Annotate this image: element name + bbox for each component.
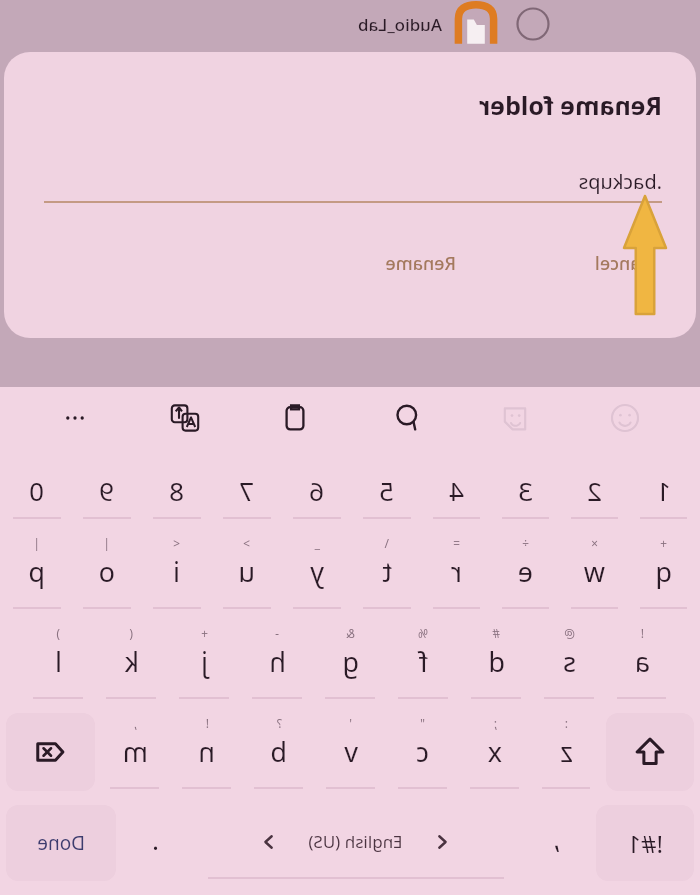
staticText: ( xyxy=(129,625,133,641)
button[interactable]: | xyxy=(74,531,140,613)
button[interactable]: < xyxy=(144,531,210,613)
button[interactable]: . xyxy=(122,799,189,887)
staticText: s xyxy=(563,643,576,680)
staticText: v xyxy=(344,733,358,770)
staticText: + xyxy=(201,625,208,641)
staticText: ; xyxy=(493,715,497,731)
button[interactable]: @ xyxy=(535,621,604,703)
staticText: English (US) xyxy=(308,830,403,853)
staticText: Done xyxy=(37,830,85,856)
staticText: p xyxy=(28,553,45,590)
staticText: 5 xyxy=(379,473,394,508)
staticText: f xyxy=(418,643,428,680)
button[interactable]: Translate xyxy=(130,387,240,449)
button[interactable]: Done xyxy=(6,805,116,881)
button[interactable]: 7 xyxy=(214,453,280,523)
button[interactable]: : xyxy=(533,711,600,793)
button[interactable]: ? xyxy=(245,711,313,793)
staticText: j xyxy=(201,643,208,680)
staticText: h xyxy=(269,643,286,680)
staticText: _ xyxy=(314,535,320,551)
button[interactable]: Search xyxy=(350,387,460,449)
staticText: o xyxy=(98,553,115,590)
button[interactable]: 4 xyxy=(424,453,489,523)
button[interactable]: Cancel xyxy=(584,243,662,284)
staticText: 0 xyxy=(29,473,44,508)
button[interactable]: ) xyxy=(24,621,93,703)
staticText: + xyxy=(660,535,667,551)
button[interactable]: 8 xyxy=(144,453,210,523)
staticText: : xyxy=(564,715,568,731)
staticText: r xyxy=(450,553,462,590)
staticText: u xyxy=(238,553,255,590)
button[interactable]: ! xyxy=(608,621,676,703)
button[interactable]: + xyxy=(170,621,239,703)
button[interactable]: 0 xyxy=(4,453,70,523)
button[interactable]: , xyxy=(523,799,590,887)
button[interactable]: | xyxy=(4,531,70,613)
staticText: 8 xyxy=(169,473,184,508)
button[interactable]: \ xyxy=(354,531,420,613)
button[interactable]: ' xyxy=(317,711,385,793)
staticText: a xyxy=(634,643,650,680)
staticText: ? xyxy=(276,715,282,731)
button[interactable]: × xyxy=(562,531,627,613)
staticText: b xyxy=(270,733,287,770)
button[interactable]: = xyxy=(424,531,489,613)
button[interactable]: 6 xyxy=(284,453,350,523)
staticText: > xyxy=(243,535,250,551)
staticText: ! xyxy=(205,715,209,731)
staticText: . xyxy=(152,822,159,857)
button[interactable]: % xyxy=(389,621,458,703)
staticText: ' xyxy=(349,715,352,731)
button[interactable]: > xyxy=(214,531,280,613)
staticText: , xyxy=(553,821,560,856)
staticText: m xyxy=(122,733,148,770)
button[interactable]: , xyxy=(101,711,169,793)
button[interactable]: ( xyxy=(97,621,166,703)
staticText: 3 xyxy=(518,473,533,508)
button[interactable]: Shift xyxy=(606,713,694,791)
staticText: | xyxy=(33,535,40,551)
staticText: < xyxy=(173,535,180,551)
button[interactable]: Backspace xyxy=(6,713,95,791)
button[interactable]: English (US) xyxy=(195,807,517,879)
button[interactable]: Emoji xyxy=(570,387,680,449)
staticText: n xyxy=(198,733,215,770)
button[interactable]: More options xyxy=(20,387,130,449)
button[interactable]: ; xyxy=(461,711,529,793)
staticText: - xyxy=(275,625,279,641)
staticText: & xyxy=(346,625,355,641)
button[interactable]: 1 xyxy=(631,453,696,523)
button[interactable]: _ xyxy=(284,531,350,613)
staticText: # xyxy=(492,625,500,641)
staticText: 2 xyxy=(587,473,602,508)
staticText: g xyxy=(342,643,359,680)
button[interactable]: ÷ xyxy=(493,531,558,613)
button[interactable]: 3 xyxy=(493,453,558,523)
staticText: 4 xyxy=(449,473,464,508)
button[interactable]: ! xyxy=(173,711,241,793)
button[interactable]: # xyxy=(462,621,531,703)
staticText: Audio_Lab xyxy=(357,13,442,36)
staticText: e xyxy=(517,553,533,590)
button[interactable]: 9 xyxy=(74,453,140,523)
staticText: ! xyxy=(640,625,644,641)
staticText: z xyxy=(560,733,573,770)
button[interactable]: 2 xyxy=(562,453,627,523)
button[interactable]: 5 xyxy=(354,453,420,523)
staticText: .backups xyxy=(578,168,662,195)
button[interactable]: & xyxy=(316,621,385,703)
button[interactable]: Rename xyxy=(375,243,466,284)
staticText: t xyxy=(382,553,392,590)
button[interactable]: " xyxy=(389,711,457,793)
staticText: ) xyxy=(56,625,60,641)
button[interactable]: - xyxy=(243,621,312,703)
staticText: @ xyxy=(564,625,575,641)
button[interactable]: Clipboard xyxy=(240,387,350,449)
button[interactable]: + xyxy=(631,531,696,613)
button[interactable]: !#1 xyxy=(596,805,694,881)
staticText: l xyxy=(55,643,62,680)
staticText: = xyxy=(453,535,460,551)
